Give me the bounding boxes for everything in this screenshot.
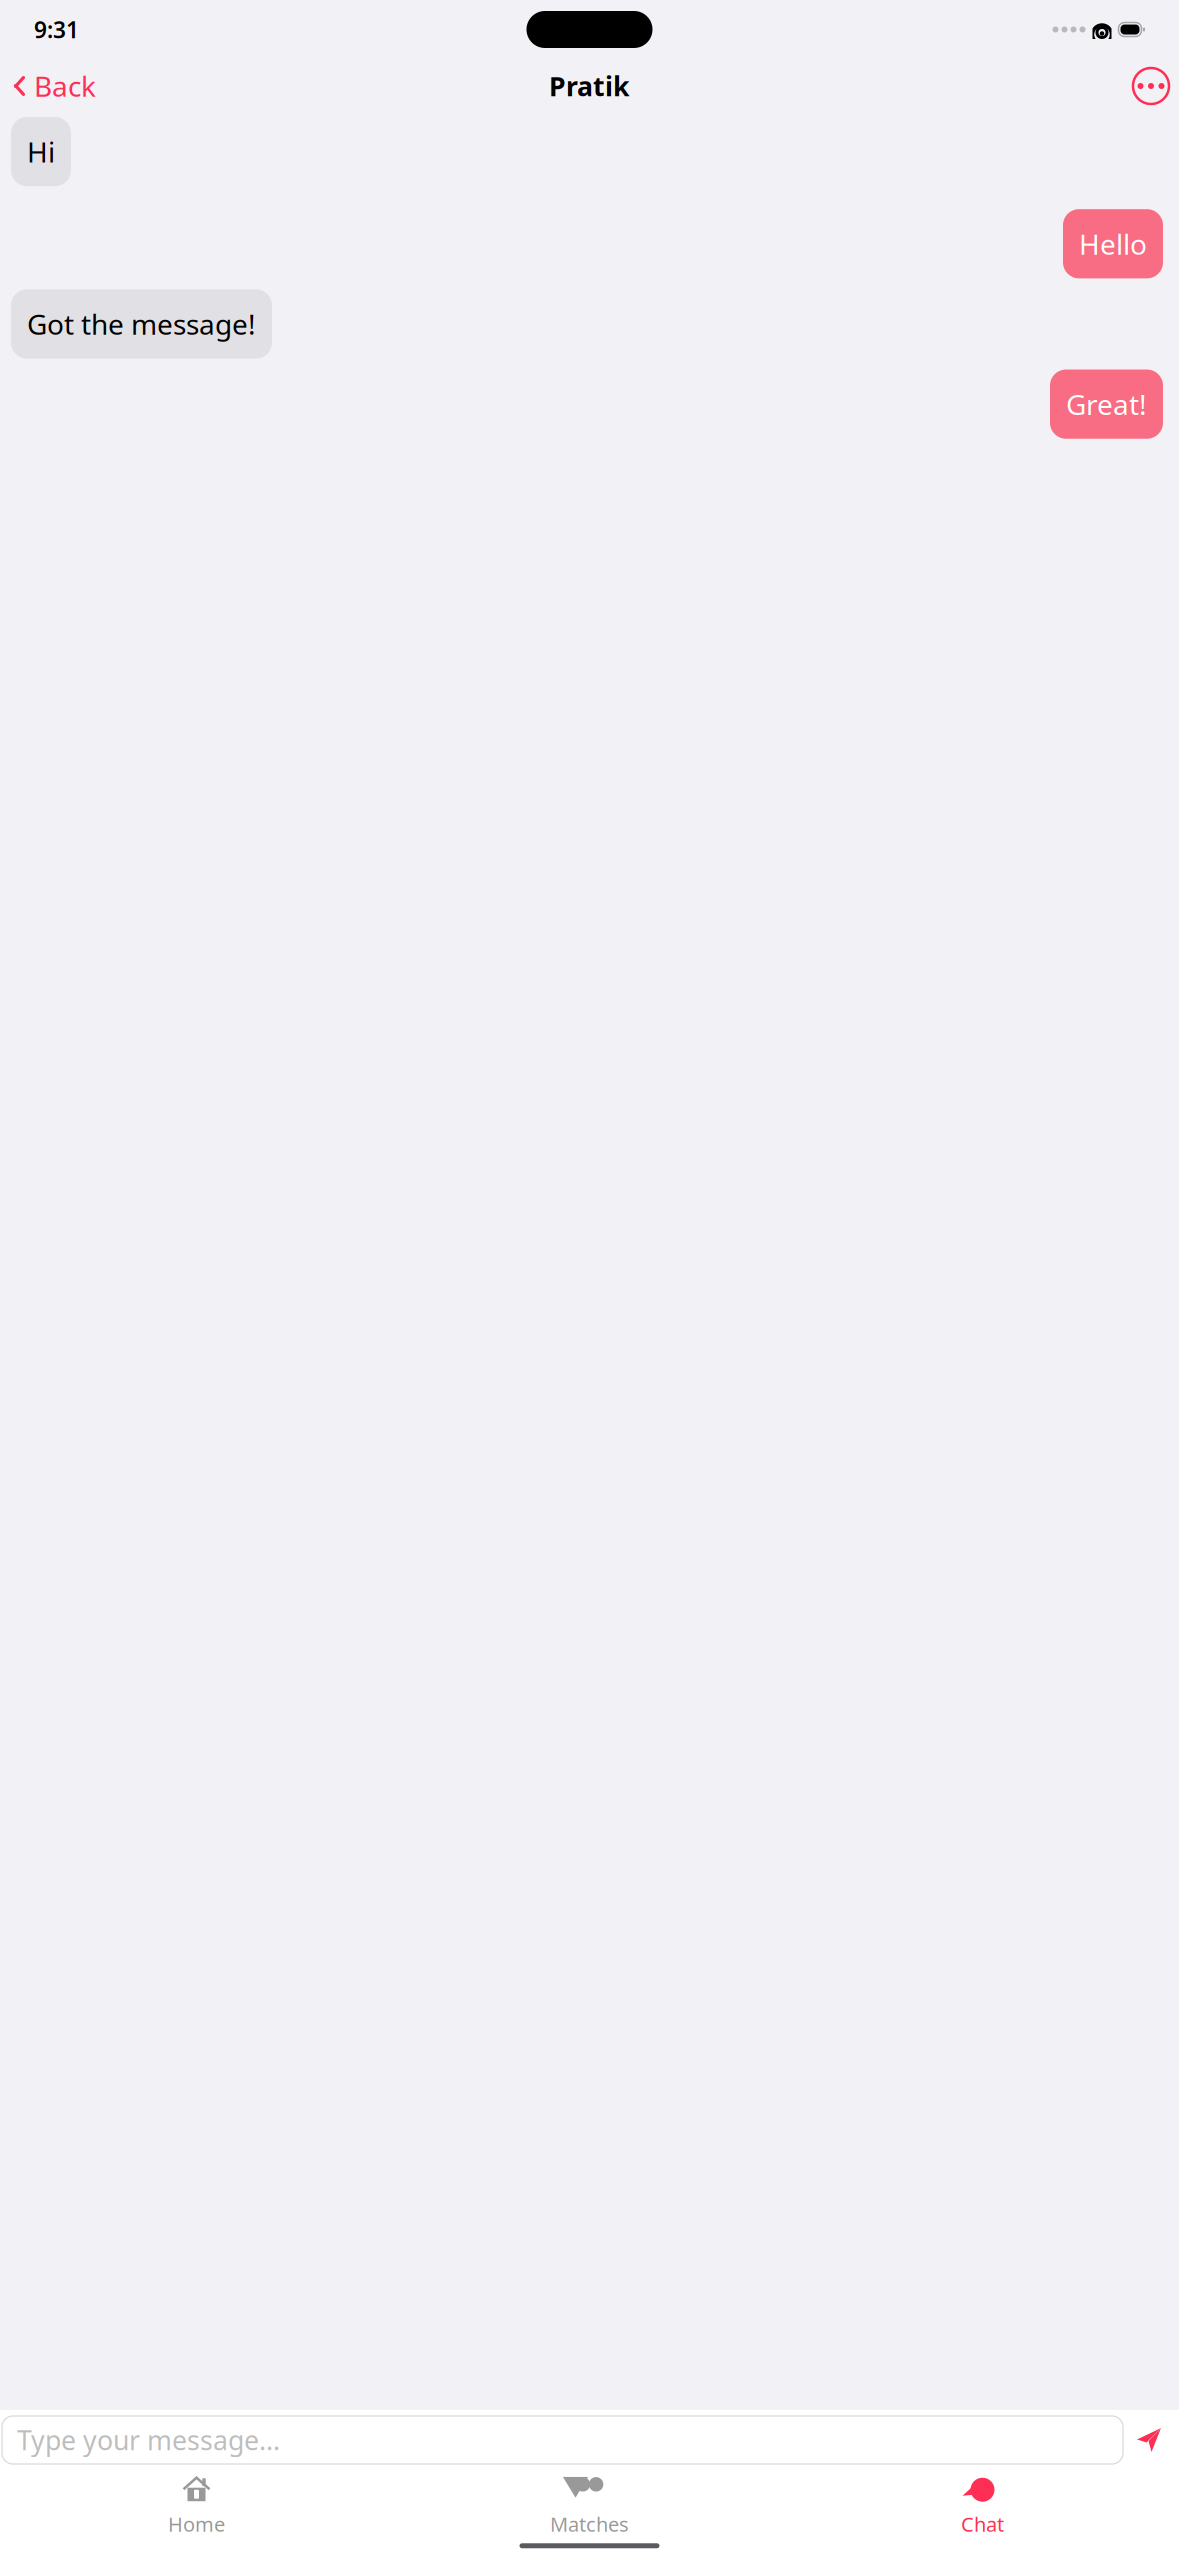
staticText: 9:31 bbox=[34, 14, 79, 44]
button[interactable]: Back bbox=[6, 59, 102, 113]
staticText: Back bbox=[34, 67, 96, 105]
staticText: Type your message... bbox=[17, 2422, 280, 2458]
staticText: Hello bbox=[1079, 225, 1147, 262]
button[interactable]: Send bbox=[1123, 2416, 1175, 2464]
staticText: Chat bbox=[961, 2511, 1004, 2537]
button[interactable]: Chat bbox=[786, 2469, 1179, 2543]
button[interactable]: Home bbox=[0, 2469, 393, 2543]
staticText: Matches bbox=[550, 2511, 629, 2537]
button[interactable]: Matches bbox=[393, 2469, 786, 2543]
staticText: Great! bbox=[1066, 385, 1147, 423]
staticText: Home bbox=[168, 2511, 225, 2537]
button[interactable]: More options bbox=[1129, 64, 1173, 108]
staticText: Got the message! bbox=[27, 305, 256, 343]
staticText: Hi bbox=[27, 133, 55, 170]
staticText: Pratik bbox=[549, 68, 630, 104]
button[interactable]: Type your message... bbox=[2, 2416, 1123, 2464]
